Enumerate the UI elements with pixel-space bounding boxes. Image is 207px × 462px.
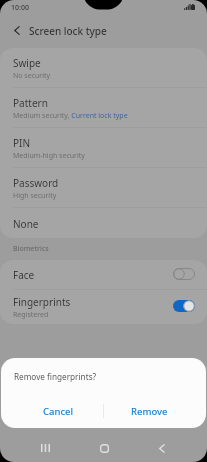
staticText: Pattern xyxy=(13,96,48,110)
button[interactable]: Face xyxy=(0,260,207,289)
staticText: Swipe xyxy=(13,56,41,70)
staticText: Remove xyxy=(131,405,168,418)
staticText: None xyxy=(13,217,39,231)
staticText: PIN xyxy=(13,136,31,150)
button[interactable]: On xyxy=(173,300,195,312)
button[interactable]: Back xyxy=(148,434,176,462)
button[interactable]: Recent apps xyxy=(31,434,59,462)
button[interactable]: Swipe xyxy=(0,48,207,87)
staticText: No security xyxy=(13,71,51,81)
staticText: Medium security, Current lock type xyxy=(13,111,128,121)
button[interactable]: Pattern xyxy=(0,88,207,127)
staticText: Remove fingerprints? xyxy=(14,371,97,382)
staticText: Registered xyxy=(13,310,49,320)
button[interactable]: Off xyxy=(173,268,195,280)
button[interactable]: Navigate up xyxy=(5,19,28,42)
staticText: Medium-high security xyxy=(13,151,85,161)
staticText: Fingerprints xyxy=(13,295,71,309)
staticText: Password xyxy=(13,176,59,190)
button[interactable]: Password xyxy=(0,168,207,207)
staticText: Cancel xyxy=(43,405,74,418)
staticText: Biometrics xyxy=(13,244,49,254)
button[interactable]: Home xyxy=(90,434,118,462)
button[interactable]: Remove xyxy=(104,394,194,428)
button[interactable]: Cancel xyxy=(13,394,103,428)
staticText: Face xyxy=(13,268,35,282)
button[interactable]: Fingerprints xyxy=(0,290,207,324)
staticText: Screen lock type xyxy=(29,24,107,38)
staticText: High security xyxy=(13,191,57,201)
button[interactable]: None xyxy=(0,208,207,238)
button[interactable]: PIN xyxy=(0,128,207,167)
staticText: 10:00 xyxy=(11,3,29,13)
